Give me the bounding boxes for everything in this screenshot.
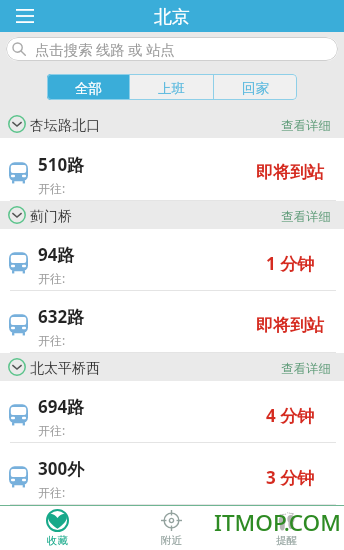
staticText: 附近 — [161, 534, 182, 547]
staticText: 上班 — [158, 80, 185, 97]
staticText: 3 分钟 — [266, 466, 315, 489]
staticText: 300外 — [38, 457, 85, 480]
button[interactable]: 694路 — [0, 381, 344, 443]
staticText: 开往: — [38, 484, 66, 500]
staticText: 即将到站 — [256, 315, 324, 336]
staticText: 510路 — [38, 153, 85, 176]
button[interactable]: 上班 — [130, 74, 213, 100]
staticText: 开往: — [38, 270, 66, 286]
staticText: 收藏 — [47, 534, 68, 547]
staticText: 即将到站 — [256, 162, 324, 183]
staticText: 632路 — [38, 305, 85, 328]
staticText: 开往: — [38, 180, 66, 196]
button[interactable]: 回家 — [214, 74, 297, 100]
staticText: 94路 — [38, 243, 75, 266]
button[interactable]: 94路 — [0, 229, 344, 291]
staticText: 北京 — [154, 6, 190, 29]
staticText: 694路 — [38, 395, 85, 418]
staticText: 开往: — [38, 422, 66, 438]
staticText: 1 分钟 — [266, 252, 315, 275]
staticText: 点击搜索 线路 或 站点 — [35, 40, 175, 60]
staticText: 北太平桥西 — [30, 360, 100, 378]
button[interactable]: 收藏 — [0, 506, 114, 550]
staticText: 查看详细 — [281, 209, 331, 225]
button[interactable]: 杏坛路北口 — [0, 110, 344, 138]
button[interactable]: Menu — [0, 0, 50, 32]
button[interactable]: 点击搜索 线路 或 站点 — [6, 37, 338, 61]
staticText: 全部 — [75, 80, 102, 97]
staticText: 提醒 — [276, 534, 297, 547]
button[interactable]: 附近 — [114, 506, 229, 550]
button[interactable]: 提醒 — [229, 506, 344, 550]
staticText: 4 分钟 — [266, 404, 315, 427]
button[interactable]: 300外 — [0, 443, 344, 505]
staticText: 查看详细 — [281, 118, 331, 134]
staticText: 杏坛路北口 — [30, 117, 100, 135]
button[interactable]: 北太平桥西 — [0, 353, 344, 381]
button[interactable]: 632路 — [0, 291, 344, 353]
button[interactable]: 全部 — [47, 74, 129, 100]
staticText: 开往: — [38, 332, 66, 348]
button[interactable]: 蓟门桥 — [0, 201, 344, 229]
button[interactable]: 510路 — [0, 138, 344, 201]
staticText: ITMOP.COM — [214, 507, 341, 538]
staticText: 蓟门桥 — [30, 208, 72, 226]
staticText: 回家 — [242, 80, 269, 97]
staticText: 查看详细 — [281, 361, 331, 377]
